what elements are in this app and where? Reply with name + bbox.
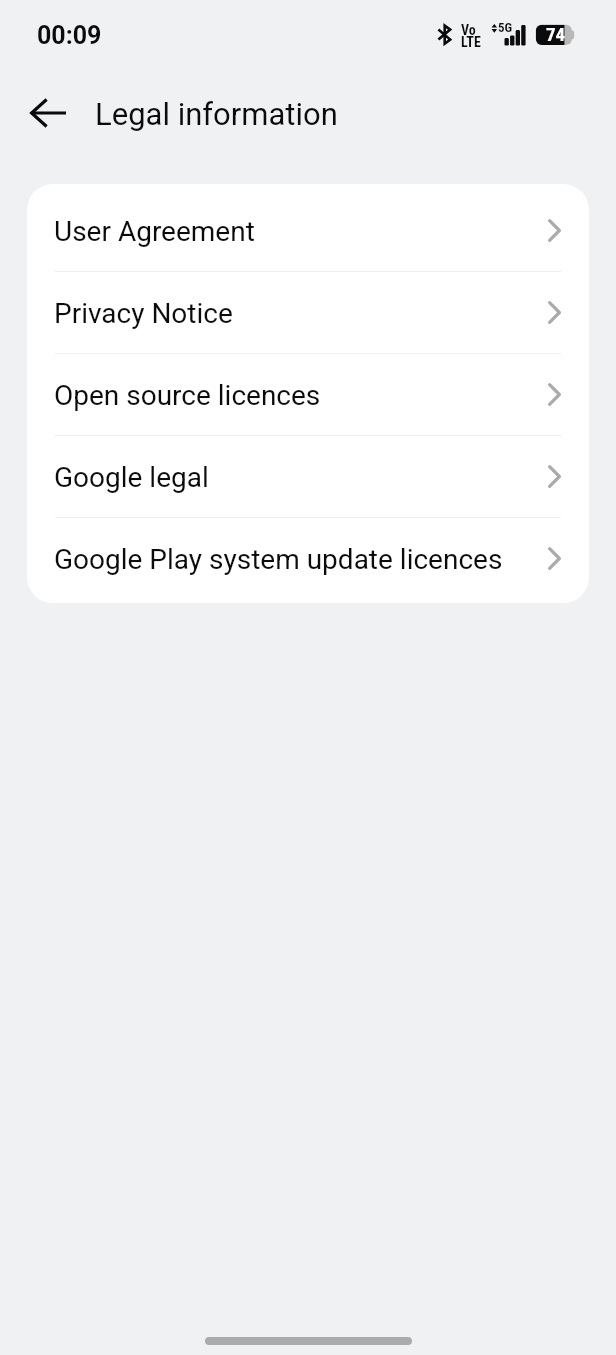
button[interactable]: Privacy Notice [27,272,589,353]
button[interactable]: Google legal [27,436,589,517]
staticText: LTE [461,34,481,50]
staticText: User Agreement [54,215,548,248]
staticText: Privacy Notice [54,297,548,330]
staticText: 74 [546,23,566,45]
staticText: 00:09 [37,21,102,50]
button[interactable]: Google Play system update licences [27,518,589,599]
staticText: Legal information [95,96,338,132]
button[interactable]: User Agreement [27,190,589,271]
staticText: Vo [461,22,476,38]
staticText: Google Play system update licences [54,543,548,576]
staticText: Google legal [54,461,548,494]
button[interactable]: Back [12,77,84,149]
staticText: Open source licences [54,379,548,412]
button[interactable]: Open source licences [27,354,589,435]
staticText: 5G [498,20,513,35]
